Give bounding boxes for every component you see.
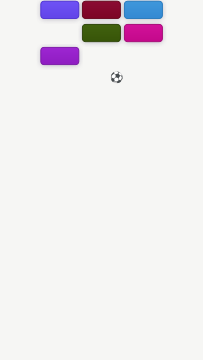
- button[interactable]: Crimson brick: [82, 1, 120, 18]
- button[interactable]: Violet brick: [41, 1, 79, 18]
- button[interactable]: Green brick: [82, 24, 120, 42]
- button[interactable]: Magenta brick: [124, 24, 162, 42]
- button[interactable]: Blue brick: [124, 1, 162, 18]
- button[interactable]: Purple brick: [41, 47, 79, 65]
- staticText: ⚽: [110, 71, 123, 84]
